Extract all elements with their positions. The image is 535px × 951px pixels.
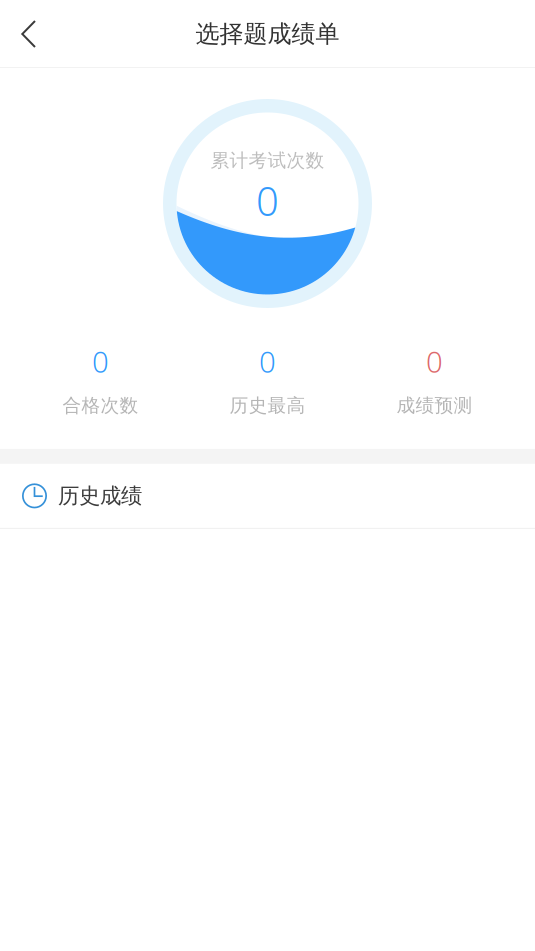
staticText: 0 bbox=[259, 342, 276, 381]
staticText: 0 bbox=[256, 174, 279, 227]
staticText: 0 bbox=[92, 342, 109, 381]
staticText: 合格次数 bbox=[62, 394, 138, 417]
staticText: 选择题成绩单 bbox=[195, 19, 339, 49]
button[interactable]: Back bbox=[0, 0, 58, 68]
staticText: 历史最高 bbox=[229, 394, 305, 417]
staticText: 累计考试次数 bbox=[210, 149, 324, 172]
staticText: 0 bbox=[426, 342, 443, 381]
button[interactable]: 历史成绩 bbox=[0, 464, 535, 528]
staticText: 历史成绩 bbox=[58, 483, 142, 509]
staticText: 成绩预测 bbox=[396, 394, 472, 417]
